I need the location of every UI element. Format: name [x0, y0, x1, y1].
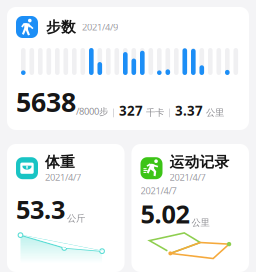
staticText: 3.37 — [175, 102, 203, 119]
staticText: 公斤 — [67, 213, 85, 224]
button[interactable]: 步数 — [7, 7, 249, 130]
staticText: 公里 — [191, 217, 209, 228]
staticText: 公里 — [203, 107, 224, 118]
staticText: 2021/4/7 — [169, 171, 205, 183]
staticText: 运动记录 — [169, 153, 229, 171]
staticText: 5638 — [16, 84, 76, 119]
staticText: 327 — [119, 102, 143, 119]
staticText: 千卡 — [143, 107, 164, 118]
staticText: 2021/4/7 — [140, 184, 176, 197]
staticText: 体重 — [45, 153, 75, 171]
staticText: /8000步 — [76, 105, 108, 117]
staticText: 2021/4/9 — [82, 21, 118, 33]
staticText: 5.02 — [140, 197, 189, 230]
button[interactable]: 体重 — [7, 144, 124, 272]
staticText: 步数 — [46, 18, 76, 36]
button[interactable]: 运动记录 — [131, 144, 249, 272]
staticText: 53.3 — [16, 192, 65, 226]
staticText: 2021/4/7 — [45, 171, 81, 183]
